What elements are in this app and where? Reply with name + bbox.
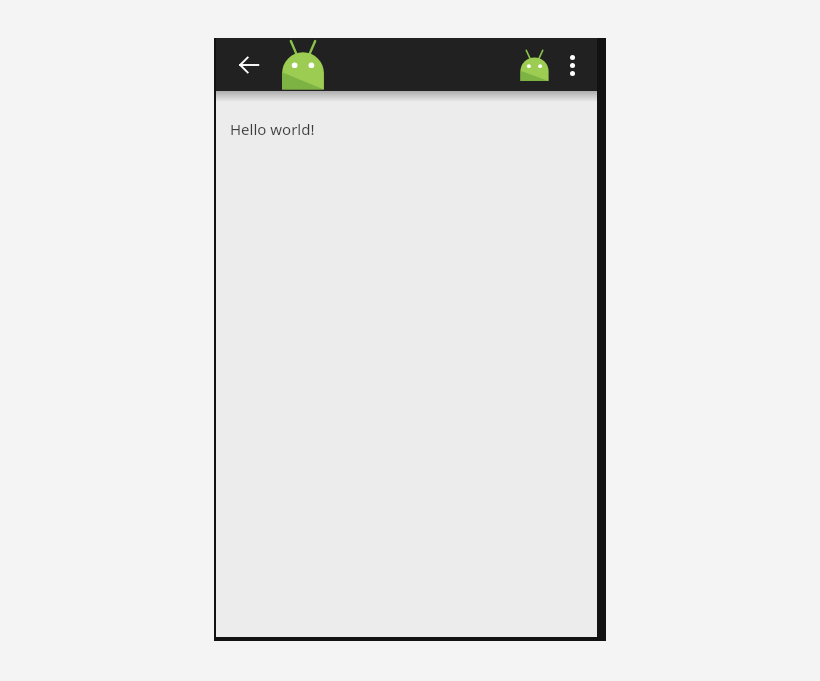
button[interactable]: Navigate up bbox=[232, 48, 266, 82]
staticText: Hello world! bbox=[230, 119, 315, 139]
button[interactable]: More options bbox=[555, 48, 589, 82]
button[interactable]: Android logo bbox=[280, 39, 326, 91]
button[interactable]: Android action bbox=[515, 46, 553, 84]
